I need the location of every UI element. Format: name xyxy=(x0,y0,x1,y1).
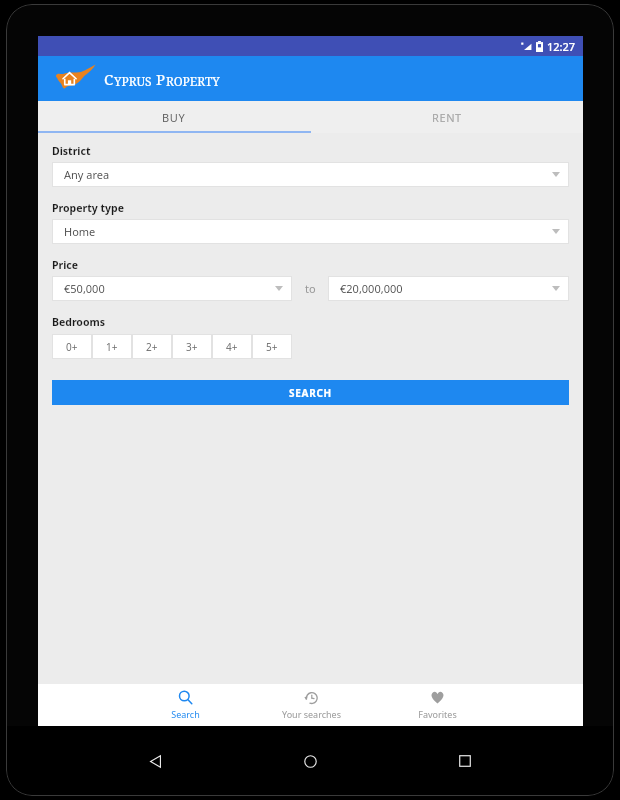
staticText: Your searches xyxy=(282,708,341,720)
staticText: 12:27 xyxy=(547,39,576,54)
button[interactable]: RENT xyxy=(310,101,583,133)
button[interactable]: BUY xyxy=(38,101,310,133)
button[interactable]: €50,000 xyxy=(52,276,292,301)
staticText: P xyxy=(156,69,166,89)
staticText: RENT xyxy=(432,110,462,125)
staticText: 3+ xyxy=(186,340,198,354)
button[interactable]: Favorites xyxy=(394,684,480,726)
staticText: to xyxy=(305,281,316,296)
button[interactable]: Your searches xyxy=(268,684,354,726)
staticText: ROPERTY xyxy=(166,73,220,89)
staticText: Any area xyxy=(64,167,110,182)
other: Favorites xyxy=(430,690,445,705)
other: Search xyxy=(178,690,193,705)
staticText: C xyxy=(104,69,114,89)
staticText: Home xyxy=(64,224,96,239)
button[interactable]: Search xyxy=(142,684,228,726)
staticText: District xyxy=(52,144,91,158)
button[interactable]: 4+ xyxy=(212,334,252,359)
staticText: 5+ xyxy=(266,340,278,354)
button[interactable]: Home xyxy=(52,219,569,244)
button[interactable]: 0+ xyxy=(52,334,92,359)
button[interactable]: 2+ xyxy=(132,334,172,359)
button[interactable]: €20,000,000 xyxy=(328,276,569,301)
button[interactable]: 1+ xyxy=(92,334,132,359)
button[interactable]: 5+ xyxy=(252,334,292,359)
staticText: €20,000,000 xyxy=(340,281,403,296)
staticText: €50,000 xyxy=(64,281,105,296)
staticText: Search xyxy=(171,708,200,720)
staticText: 4+ xyxy=(226,340,238,354)
button[interactable]: Recents xyxy=(447,743,483,779)
staticText: 1+ xyxy=(106,340,118,354)
button[interactable]: Back xyxy=(137,743,173,779)
other: Your searches xyxy=(304,690,319,705)
staticText: YPRUS xyxy=(114,73,152,89)
staticText: 0+ xyxy=(66,340,78,354)
staticText: Price xyxy=(52,258,79,272)
staticText: Property type xyxy=(52,201,124,215)
staticText: SEARCH xyxy=(289,386,332,400)
staticText: BUY xyxy=(162,110,186,125)
button[interactable]: Home xyxy=(292,743,328,779)
staticText: 2+ xyxy=(146,340,158,354)
button[interactable]: 3+ xyxy=(172,334,212,359)
button[interactable]: Any area xyxy=(52,162,569,187)
button[interactable]: SEARCH xyxy=(52,380,569,405)
staticText: Bedrooms xyxy=(52,315,106,329)
staticText: Favorites xyxy=(418,708,457,720)
